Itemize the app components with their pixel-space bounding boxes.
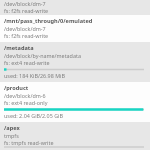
staticText: fs: ext4 read-write — [4, 59, 144, 66]
staticText: /mnt/pass_through/0/emulated — [4, 17, 144, 25]
staticText: /apex — [4, 124, 144, 132]
button[interactable]: /mnt/pass_through/0/emulated — [0, 15, 150, 42]
staticText: tmpfs — [4, 132, 144, 139]
button[interactable]: /metadata — [0, 42, 150, 82]
button[interactable]: /apex — [0, 122, 150, 150]
button[interactable]: /product — [0, 82, 150, 122]
staticText: fs: tmpfs read-write — [4, 139, 144, 146]
staticText: /metadata — [4, 44, 144, 52]
staticText: /dev/block/by-name/metadata — [4, 52, 144, 59]
staticText: fs: f2fs read-write — [4, 32, 144, 39]
staticText: used: 2.04 GiB/2.05 GiB — [4, 112, 144, 119]
staticText: /dev/block/dm-6 — [4, 92, 144, 99]
staticText: /product — [4, 84, 144, 92]
button[interactable]: /dev/block/dm-7 — [0, 0, 150, 15]
staticText: fs: ext4 read-only — [4, 99, 144, 106]
staticText: /dev/block/dm-7 — [4, 0, 144, 7]
staticText: fs: f2fs read-write — [4, 7, 144, 14]
staticText: used: 184 KiB/26.98 MiB — [4, 72, 144, 79]
staticText: /dev/block/dm-7 — [4, 25, 144, 32]
